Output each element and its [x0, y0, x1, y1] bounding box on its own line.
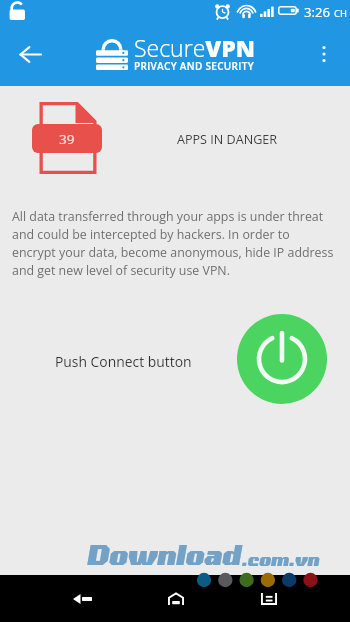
- staticText: Download: [86, 538, 241, 570]
- staticText: 39: [59, 130, 75, 148]
- button[interactable]: Recent apps: [245, 579, 292, 618]
- staticText: PRIVACY AND SECURITY: [134, 59, 254, 73]
- staticText: APPS IN DANGER: [177, 131, 278, 148]
- button[interactable]: Back: [8, 32, 52, 76]
- staticText: 3:26: [304, 3, 331, 21]
- staticText: All data transferred through your apps i…: [12, 208, 334, 279]
- button[interactable]: Back: [59, 580, 106, 618]
- button[interactable]: Connect: [237, 314, 327, 404]
- staticText: SecureVPN: [134, 32, 255, 63]
- staticText: Push Connect button: [55, 352, 192, 371]
- staticText: CH: [334, 7, 347, 20]
- button[interactable]: Home: [152, 578, 199, 618]
- button[interactable]: More options: [304, 34, 344, 74]
- staticText: .com.vn: [241, 549, 319, 569]
